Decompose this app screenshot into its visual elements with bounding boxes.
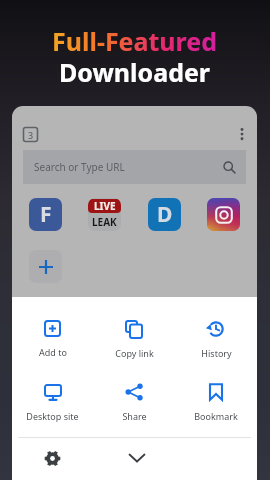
button[interactable]: Bookmark — [175, 383, 257, 422]
button[interactable]: More options — [233, 125, 251, 143]
button[interactable]: Collapse — [125, 446, 149, 470]
staticText: Search or Type URL — [34, 160, 125, 174]
button[interactable]: Copy link — [93, 320, 175, 359]
staticText: Copy link — [115, 347, 154, 359]
staticText: Share — [122, 410, 147, 422]
staticText: D — [157, 200, 173, 229]
staticText: LEAK — [92, 215, 117, 229]
staticText: Add to — [39, 346, 67, 358]
button[interactable]: Tabs — [23, 127, 38, 142]
button[interactable]: Dailymotion — [148, 198, 181, 231]
button[interactable]: History — [175, 320, 257, 359]
button[interactable]: Facebook — [29, 198, 62, 231]
staticText: Bookmark — [194, 410, 238, 422]
button[interactable]: Share — [93, 383, 175, 422]
button[interactable]: Add shortcut — [29, 250, 62, 283]
button[interactable]: Search or Type URL — [23, 150, 246, 184]
button[interactable]: Settings — [40, 446, 64, 470]
button[interactable]: LiveLeak — [88, 198, 121, 231]
staticText: Downloader — [59, 55, 211, 89]
staticText: F — [40, 200, 52, 229]
button[interactable]: Instagram — [207, 198, 240, 231]
staticText: Full-Featured — [52, 24, 218, 58]
staticText: Desktop site — [26, 410, 79, 422]
button[interactable]: Add to — [12, 320, 93, 358]
staticText: 3 — [28, 129, 34, 141]
staticText: History — [201, 347, 232, 359]
button[interactable]: Desktop site — [12, 383, 93, 422]
staticText: LIVE — [94, 199, 116, 213]
